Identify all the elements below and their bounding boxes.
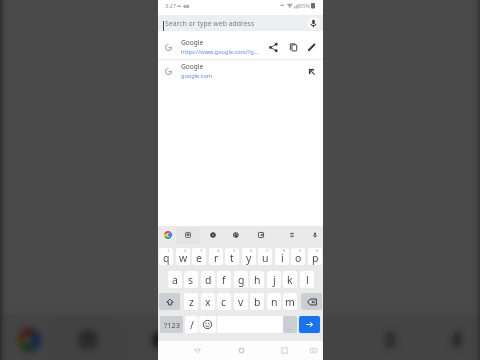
button[interactable]: 2 [176, 248, 190, 265]
button[interactable]: Translate [284, 226, 300, 243]
button[interactable]: Text editing [253, 226, 269, 243]
button[interactable]: Clipboard [64, 314, 111, 360]
staticText: 0 [316, 248, 319, 254]
button[interactable]: n [267, 293, 281, 310]
button[interactable]: Use suggestion [302, 58, 320, 84]
staticText: Google [181, 38, 204, 47]
button[interactable]: f [217, 271, 231, 288]
button[interactable]: Translate [367, 314, 413, 360]
button[interactable]: 5 [225, 248, 239, 265]
button[interactable]: Emoji [199, 316, 216, 333]
button[interactable]: Go [299, 316, 320, 333]
staticText: 5 [233, 248, 236, 254]
button[interactable]: Stickers [204, 314, 251, 360]
staticText: w [179, 251, 188, 265]
button[interactable]: Text editing [277, 314, 323, 360]
staticText: ?123 [164, 320, 180, 330]
staticText: 3 [200, 248, 203, 254]
button[interactable]: 7 [258, 248, 272, 265]
button[interactable]: Shift [159, 293, 180, 310]
staticText: z [189, 295, 194, 309]
staticText: e [196, 251, 202, 265]
button[interactable]: Hide keyboard [304, 341, 322, 360]
button[interactable]: 3 [192, 248, 206, 265]
staticText: f [222, 273, 226, 287]
staticText: 2 [184, 248, 187, 254]
button[interactable]: Google [158, 59, 323, 85]
staticText: i [281, 251, 284, 265]
staticText: 4 [217, 248, 220, 254]
staticText: x [205, 295, 211, 309]
staticText: k [287, 273, 293, 287]
staticText: c [221, 295, 227, 309]
button[interactable]: h [250, 271, 264, 288]
staticText: o [295, 251, 302, 265]
button[interactable]: z [184, 293, 198, 310]
staticText: a [172, 273, 178, 287]
staticText: google.com [181, 72, 213, 80]
button[interactable]: l [300, 271, 314, 288]
staticText: p [312, 251, 319, 265]
button[interactable]: Search or type web address [158, 15, 323, 31]
button[interactable]: j [267, 271, 281, 288]
staticText: t [230, 251, 234, 265]
button[interactable]: Google [158, 32, 323, 59]
button[interactable]: d [201, 271, 215, 288]
staticText: 3:27 [165, 2, 177, 10]
staticText: / [190, 318, 194, 332]
staticText: 8 [283, 248, 286, 254]
staticText: Google [181, 62, 204, 71]
button[interactable]: Keyboard settings [137, 314, 184, 360]
button[interactable]: c [217, 293, 231, 310]
button[interactable]: Recent apps [275, 341, 293, 360]
staticText: m [285, 295, 295, 309]
button[interactable]: 4 [209, 248, 223, 265]
button[interactable]: . [283, 316, 297, 333]
staticText: n [271, 295, 278, 309]
button[interactable]: Backspace [301, 293, 322, 310]
button[interactable]: 6 [242, 248, 256, 265]
button[interactable]: a [168, 271, 182, 288]
button[interactable]: Google search [160, 226, 176, 243]
staticText: https://www.google.com/?g... [181, 48, 259, 56]
staticText: 85% [299, 2, 310, 9]
button[interactable]: 0 [308, 248, 322, 265]
button[interactable]: x [201, 293, 215, 310]
staticText: 6 [250, 248, 253, 254]
staticText: v [238, 295, 244, 309]
staticText: r [214, 251, 219, 265]
button[interactable]: m [283, 293, 297, 310]
button[interactable]: s [184, 271, 198, 288]
button[interactable]: / [185, 316, 198, 333]
button[interactable]: 8 [275, 248, 289, 265]
button[interactable]: Keyboard settings [205, 226, 221, 243]
button[interactable]: b [250, 293, 264, 310]
button[interactable]: ?123 [160, 316, 183, 333]
staticText: d [205, 273, 212, 287]
staticText: j [273, 273, 276, 287]
staticText: g [238, 273, 245, 287]
button[interactable]: Share [264, 34, 282, 60]
staticText: Search or type web address [165, 19, 255, 28]
button[interactable]: Copy link [284, 34, 302, 60]
staticText: y [246, 251, 252, 265]
button[interactable]: 9 [291, 248, 305, 265]
button[interactable]: g [234, 271, 248, 288]
button[interactable]: Edit [302, 34, 320, 60]
staticText: h [254, 273, 261, 287]
button[interactable]: Back [188, 341, 206, 360]
button[interactable]: Voice input [307, 226, 323, 243]
staticText: 1 [167, 248, 170, 254]
staticText: l [306, 273, 309, 287]
staticText: . [289, 322, 292, 332]
button[interactable]: Google search [6, 314, 53, 360]
button[interactable]: k [283, 271, 297, 288]
button[interactable]: Voice input [434, 314, 480, 360]
button[interactable]: Voice search [306, 16, 320, 30]
button[interactable]: 1 [159, 248, 173, 265]
button[interactable]: Home [232, 341, 250, 360]
button[interactable]: Clipboard [180, 226, 196, 243]
button[interactable]: Stickers [228, 226, 244, 243]
button[interactable]: v [234, 293, 248, 310]
